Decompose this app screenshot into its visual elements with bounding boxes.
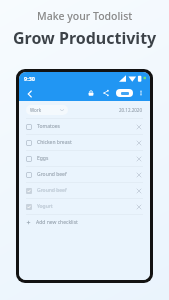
button[interactable]: Edit (116, 89, 133, 97)
staticText: Chicken breast (37, 139, 72, 146)
button[interactable]: Delete (135, 171, 143, 179)
button[interactable]: Lock (86, 88, 96, 98)
staticText: Grow Productivity (13, 27, 157, 49)
button[interactable]: Delete (135, 203, 143, 211)
staticText: Tomatoes (37, 123, 60, 130)
staticText: Add new checklist (36, 219, 78, 226)
staticText: 20.12.2020 (119, 107, 143, 113)
staticText: Make your Todolist (37, 9, 133, 23)
button[interactable]: Chicken breast (26, 135, 143, 150)
staticText: Yogurt (37, 203, 53, 210)
button[interactable]: Back (24, 88, 35, 99)
staticText: Ground beef (37, 171, 67, 178)
button[interactable]: Add new checklist (26, 215, 143, 230)
staticText: Eggs (37, 155, 49, 162)
button[interactable]: Ground beef (26, 167, 143, 182)
button[interactable]: Delete (135, 155, 143, 163)
button[interactable]: Tomatoes (26, 119, 143, 134)
button[interactable]: Delete (135, 187, 143, 195)
button[interactable]: Share (101, 88, 111, 98)
button[interactable]: More options (137, 89, 145, 97)
staticText: 9:30 (24, 75, 35, 82)
button[interactable]: Delete (135, 123, 143, 131)
staticText: Ground beef (37, 187, 67, 194)
button[interactable]: Ground beef (26, 183, 143, 198)
button[interactable]: Work (26, 105, 68, 115)
button[interactable]: Eggs (26, 151, 143, 166)
button[interactable]: Delete (135, 139, 143, 147)
staticText: Work (30, 107, 42, 113)
button[interactable]: Yogurt (26, 199, 143, 214)
